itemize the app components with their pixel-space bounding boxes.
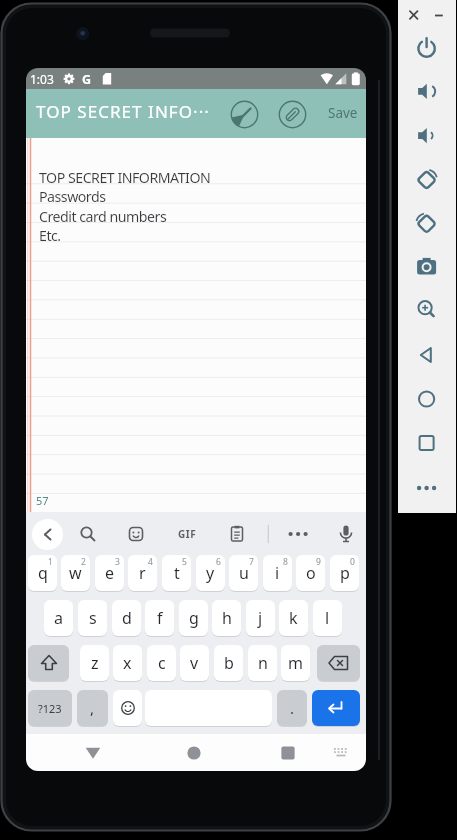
button[interactable]: r xyxy=(128,555,157,591)
button[interactable] xyxy=(412,474,441,503)
button[interactable]: o xyxy=(296,555,325,591)
staticText: k xyxy=(289,607,298,629)
button[interactable] xyxy=(412,121,441,150)
button[interactable] xyxy=(412,429,441,458)
button[interactable]: u xyxy=(229,555,258,591)
button[interactable]: f xyxy=(145,600,174,636)
staticText: s xyxy=(89,607,97,629)
staticText: 6 xyxy=(216,556,221,568)
button[interactable]: q xyxy=(28,555,57,591)
staticText: c xyxy=(158,652,166,674)
staticText: 4 xyxy=(148,556,153,568)
staticText: 2 xyxy=(81,556,86,568)
staticText: q xyxy=(38,562,48,584)
button[interactable] xyxy=(230,100,259,129)
staticText: m xyxy=(288,652,303,674)
button[interactable]: w xyxy=(61,555,90,591)
button[interactable] xyxy=(412,294,441,323)
button[interactable]: x xyxy=(113,645,142,681)
button[interactable]: k xyxy=(279,600,308,636)
staticText: g xyxy=(189,607,199,629)
button[interactable] xyxy=(317,645,360,681)
button[interactable]: d xyxy=(112,600,141,636)
staticText: r xyxy=(139,562,146,584)
staticText: o xyxy=(306,562,316,584)
staticText: 5 xyxy=(182,556,187,568)
button[interactable]: p xyxy=(330,555,359,591)
staticText: p xyxy=(340,562,350,584)
staticText: 1:03 xyxy=(30,71,54,87)
staticText: 7 xyxy=(249,556,254,568)
button[interactable] xyxy=(224,521,250,547)
button[interactable]: g xyxy=(179,600,208,636)
button[interactable] xyxy=(412,77,441,106)
staticText: 0 xyxy=(350,556,355,568)
button[interactable]: y xyxy=(196,555,225,591)
button[interactable] xyxy=(113,690,142,726)
staticText: e xyxy=(105,562,115,584)
button[interactable]: m xyxy=(281,645,310,681)
staticText: y xyxy=(206,562,215,584)
button[interactable] xyxy=(412,209,441,238)
staticText: z xyxy=(91,652,99,674)
button[interactable] xyxy=(180,741,208,765)
staticText: ?123 xyxy=(38,701,62,716)
button[interactable] xyxy=(412,385,441,414)
button[interactable]: z xyxy=(80,645,109,681)
staticText: 8 xyxy=(283,556,288,568)
staticText: w xyxy=(69,562,82,584)
staticText: t xyxy=(174,562,180,584)
staticText: f xyxy=(157,607,163,629)
button[interactable]: a xyxy=(44,600,73,636)
button[interactable]: l xyxy=(313,600,342,636)
staticText: Passwords xyxy=(39,187,106,206)
button[interactable] xyxy=(412,252,441,281)
button[interactable] xyxy=(32,519,63,550)
staticText: x xyxy=(123,652,132,674)
staticText: a xyxy=(54,607,63,629)
button[interactable] xyxy=(123,521,149,547)
button[interactable]: Save xyxy=(322,97,364,129)
staticText: Credit card numbers xyxy=(39,207,167,226)
button[interactable] xyxy=(79,741,107,765)
staticText: i xyxy=(275,562,280,584)
button[interactable] xyxy=(333,521,359,547)
button[interactable]: e xyxy=(95,555,124,591)
staticText: Save xyxy=(328,104,358,122)
button[interactable]: . xyxy=(277,690,307,726)
button[interactable] xyxy=(28,645,69,681)
staticText: h xyxy=(222,607,232,629)
staticText: 3 xyxy=(115,556,120,568)
button[interactable]: GIF xyxy=(172,524,202,544)
button[interactable]: , xyxy=(77,690,108,726)
button[interactable]: b xyxy=(214,645,243,681)
button[interactable] xyxy=(412,166,441,195)
button[interactable] xyxy=(278,100,307,129)
button[interactable]: v xyxy=(180,645,209,681)
button[interactable]: j xyxy=(246,600,275,636)
staticText: j xyxy=(258,607,263,629)
button[interactable]: t xyxy=(162,555,191,591)
staticText: b xyxy=(224,652,234,674)
button[interactable]: n xyxy=(248,645,277,681)
button[interactable]: h xyxy=(212,600,241,636)
button[interactable] xyxy=(412,33,441,62)
button[interactable]: ?123 xyxy=(28,690,72,726)
staticText: GIF xyxy=(178,527,197,541)
staticText: n xyxy=(258,652,268,674)
staticText: 1 xyxy=(48,556,53,568)
button[interactable] xyxy=(412,341,441,370)
staticText: TOP SECRET INFORMATION xyxy=(39,168,211,187)
button[interactable] xyxy=(75,521,101,547)
button[interactable] xyxy=(331,745,351,761)
staticText: . xyxy=(290,698,295,718)
button[interactable] xyxy=(274,741,302,765)
staticText: G xyxy=(82,71,92,88)
button[interactable]: s xyxy=(78,600,107,636)
staticText: u xyxy=(239,562,249,584)
button[interactable]: i xyxy=(263,555,292,591)
button[interactable]: c xyxy=(147,645,176,681)
staticText: , xyxy=(90,698,95,718)
button[interactable] xyxy=(312,690,360,726)
